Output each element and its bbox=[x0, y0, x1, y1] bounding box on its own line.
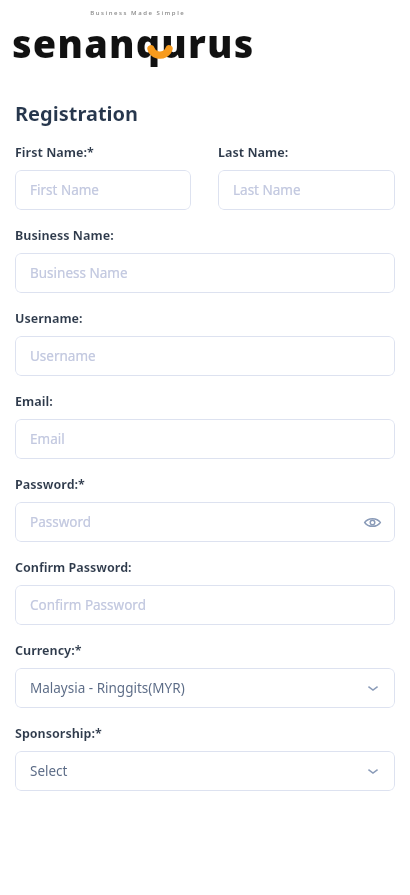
button[interactable]: Email bbox=[15, 419, 395, 459]
staticText: Username bbox=[30, 347, 96, 365]
staticText: Malaysia - Ringgits(MYR) bbox=[30, 679, 185, 697]
staticText: Business Name: bbox=[15, 227, 114, 244]
button[interactable]: First Name bbox=[15, 170, 191, 210]
staticText: Password:* bbox=[15, 476, 85, 493]
button[interactable]: Last Name bbox=[218, 170, 395, 210]
staticText: Last Name: bbox=[218, 144, 289, 161]
staticText: Username: bbox=[15, 310, 83, 327]
button[interactable]: Select bbox=[15, 751, 395, 791]
staticText: Email: bbox=[15, 393, 53, 410]
button[interactable]: Confirm Password bbox=[15, 585, 395, 625]
staticText: Sponsorship:* bbox=[15, 725, 102, 742]
button[interactable]: Show password bbox=[361, 511, 383, 533]
staticText: Registration bbox=[15, 100, 139, 127]
staticText: Email bbox=[30, 430, 65, 448]
staticText: Business Name bbox=[30, 264, 128, 282]
staticText: senanqurus bbox=[12, 17, 255, 69]
staticText: Currency:* bbox=[15, 642, 82, 659]
staticText: Password bbox=[30, 513, 92, 531]
staticText: First Name:* bbox=[15, 144, 94, 161]
button[interactable]: Business Name bbox=[15, 253, 395, 293]
button[interactable]: Username bbox=[15, 336, 395, 376]
staticText: Select bbox=[30, 762, 68, 780]
staticText: First Name bbox=[30, 181, 99, 199]
staticText: Confirm Password bbox=[30, 596, 146, 614]
staticText: Last Name bbox=[233, 181, 301, 199]
button[interactable]: Malaysia - Ringgits(MYR) bbox=[15, 668, 395, 708]
staticText: B u s i n e s s M a d e S i m p l e bbox=[57, 9, 217, 17]
button[interactable]: Password bbox=[15, 502, 395, 542]
staticText: Confirm Password: bbox=[15, 559, 132, 576]
